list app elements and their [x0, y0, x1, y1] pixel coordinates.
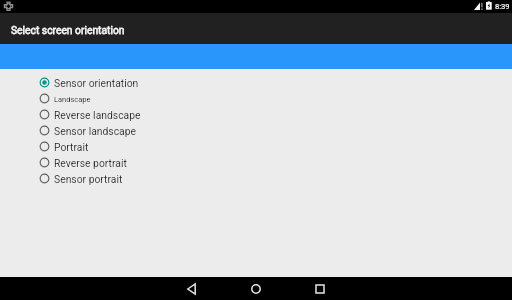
staticText: Portrait	[54, 141, 89, 153]
button[interactable]: Landscape	[0, 90, 512, 106]
button[interactable]: Back	[160, 277, 224, 300]
staticText: Sensor landscape	[54, 125, 137, 137]
button[interactable]: Portrait	[0, 138, 512, 154]
button[interactable]: Reverse portrait	[0, 154, 512, 170]
button[interactable]: Sensor portrait	[0, 170, 512, 186]
button[interactable]: Recent apps	[288, 277, 352, 300]
staticText: Select screen orientation	[11, 24, 125, 36]
staticText: 8:39	[495, 2, 510, 11]
button[interactable]: Reverse landscape	[0, 106, 512, 122]
staticText: Reverse landscape	[54, 109, 141, 121]
staticText: Sensor portrait	[54, 173, 123, 185]
button[interactable]: Home	[224, 277, 288, 300]
staticText: Landscape	[54, 95, 91, 104]
button[interactable]: Sensor orientation	[0, 74, 512, 90]
staticText: Reverse portrait	[54, 157, 127, 169]
staticText: Sensor orientation	[54, 77, 139, 89]
button[interactable]: Sensor landscape	[0, 122, 512, 138]
